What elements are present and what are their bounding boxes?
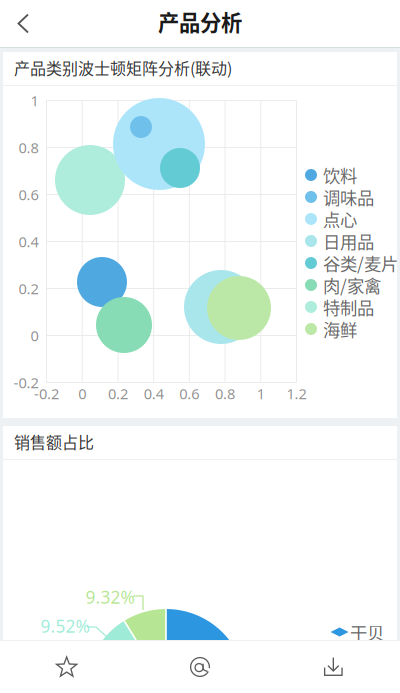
staticText: 日用品 [323, 228, 374, 254]
button[interactable]: Download [267, 641, 400, 693]
staticText: 0.4 [18, 232, 38, 251]
staticText: 产品分析 [158, 6, 242, 37]
staticText: 0.6 [18, 185, 38, 204]
staticText: 肉/家禽 [323, 272, 381, 298]
staticText: 饮料 [323, 162, 357, 188]
staticText: 调味品 [323, 184, 374, 210]
staticText: 1.2 [286, 384, 306, 403]
staticText: 0.2 [18, 279, 38, 298]
staticText: 0 [78, 384, 86, 403]
staticText: 干贝 [350, 619, 384, 645]
staticText: 0.8 [18, 138, 38, 157]
button[interactable]: Back [0, 0, 50, 47]
staticText: 点心 [323, 206, 357, 232]
staticText: 0.4 [144, 384, 164, 403]
staticText: 1 [257, 384, 265, 403]
staticText: 9.52% [40, 614, 89, 637]
staticText: -0.2 [34, 384, 59, 403]
staticText: 谷类/麦片 [323, 250, 398, 276]
staticText: 0.2 [108, 384, 128, 403]
staticText: 产品类别波士顿矩阵分析(联动) [14, 56, 232, 79]
staticText: 海鲜 [323, 316, 357, 342]
staticText: 0 [30, 326, 38, 345]
staticText: 0.8 [215, 384, 235, 403]
staticText: 1 [30, 91, 38, 110]
staticText: -0.2 [13, 373, 38, 392]
staticText: 销售额占比 [14, 430, 94, 453]
staticText: 特制品 [323, 294, 374, 320]
staticText: 9.32% [85, 585, 134, 608]
button[interactable]: Mentions [133, 641, 267, 693]
button[interactable]: Favorites [0, 641, 133, 693]
staticText: 0.6 [179, 384, 199, 403]
